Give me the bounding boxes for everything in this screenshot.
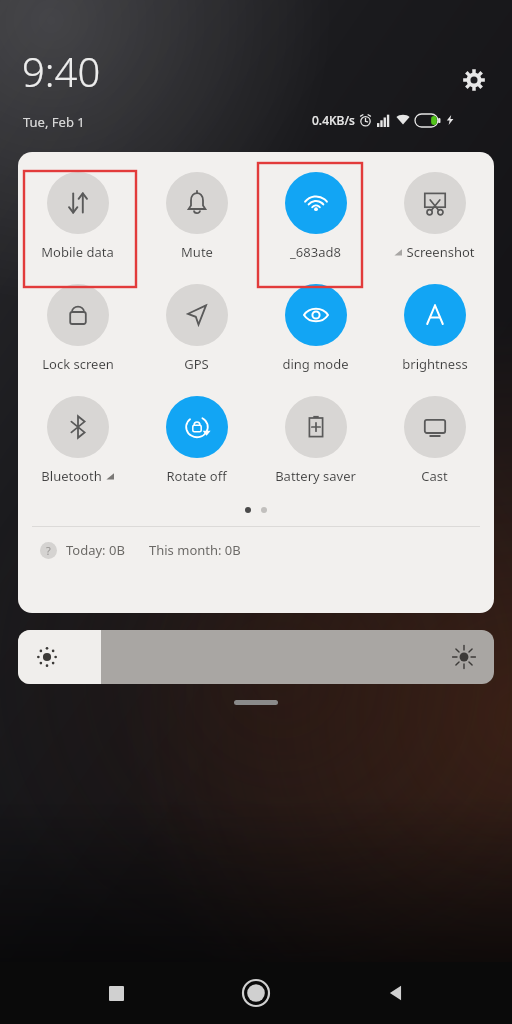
staticText: Cast: [421, 467, 448, 485]
button[interactable]: Mute: [137, 172, 256, 261]
staticText: Lock screen: [42, 355, 114, 373]
button[interactable]: Brightness: [18, 630, 494, 684]
staticText: Mute: [181, 243, 213, 261]
button[interactable]: Home: [232, 969, 280, 1017]
staticText: ?: [46, 543, 51, 558]
staticText: Tue, Feb 1: [23, 113, 85, 131]
staticText: 9:40: [22, 44, 101, 98]
staticText: _683ad8: [290, 243, 341, 261]
staticText: GPS: [184, 355, 209, 373]
staticText: Rotate off: [166, 467, 227, 485]
staticText: Battery saver: [275, 467, 356, 485]
staticText: Screenshot: [406, 243, 475, 261]
staticText: ding mode: [282, 355, 349, 373]
button[interactable]: GPS: [137, 284, 256, 373]
button[interactable]: Back: [372, 969, 420, 1017]
button[interactable]: Recents: [92, 969, 140, 1017]
button[interactable]: Settings: [456, 62, 492, 98]
button[interactable]: ?: [40, 541, 241, 559]
staticText: 0.4KB/s: [312, 112, 355, 128]
staticText: Today: 0B: [66, 541, 125, 559]
staticText: brightness: [402, 355, 468, 373]
button[interactable]: Cast: [375, 396, 494, 485]
staticText: This month: 0B: [149, 541, 241, 559]
button[interactable]: ding mode: [256, 284, 375, 373]
button[interactable]: Lock screen: [18, 284, 137, 373]
button[interactable]: _683ad8: [256, 172, 375, 261]
button[interactable]: Rotate off: [137, 396, 256, 485]
button[interactable]: Screenshot: [375, 172, 494, 261]
staticText: Mobile data: [41, 243, 114, 261]
button[interactable]: Bluetooth: [18, 396, 137, 485]
button[interactable]: Battery saver: [256, 396, 375, 485]
button[interactable]: brightness: [375, 284, 494, 373]
button[interactable]: Mobile data: [18, 172, 137, 261]
staticText: Bluetooth: [41, 467, 102, 485]
